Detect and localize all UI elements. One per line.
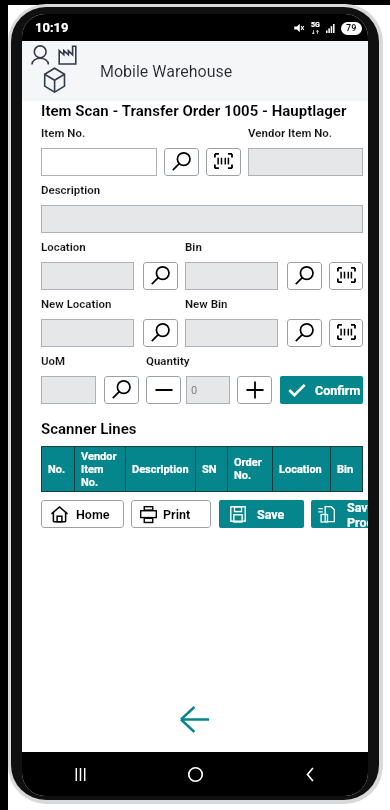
button[interactable]: Scan barcode bbox=[206, 148, 241, 176]
staticText: Order No. bbox=[234, 456, 270, 482]
button[interactable]: Vendor Item No. bbox=[74, 446, 125, 492]
staticText: Item No. bbox=[41, 126, 86, 139]
other: Mobile Warehouse logo bbox=[22, 41, 92, 101]
staticText: Bin bbox=[185, 240, 202, 253]
staticText: No. bbox=[48, 463, 66, 476]
other: Search bbox=[151, 267, 169, 285]
other: Search bbox=[295, 267, 313, 285]
other: Scan barcode bbox=[337, 267, 356, 284]
other: Scan barcode bbox=[337, 324, 356, 341]
staticText: Item Scan - Transfer Order 1005 - Hauptl… bbox=[41, 102, 347, 120]
button[interactable] bbox=[41, 319, 134, 347]
button[interactable]: No. bbox=[41, 446, 74, 492]
button[interactable]: Scan barcode bbox=[329, 319, 363, 347]
staticText: Print bbox=[163, 507, 191, 522]
button[interactable]: Confirm bbox=[280, 376, 363, 404]
other: Increase bbox=[246, 381, 264, 399]
button[interactable]: 0 bbox=[186, 376, 230, 404]
staticText: 79 bbox=[346, 23, 357, 34]
staticText: 0 bbox=[191, 384, 198, 397]
other: Decrease bbox=[155, 381, 173, 399]
staticText: Home bbox=[76, 507, 110, 522]
button[interactable]: Search bbox=[287, 319, 322, 347]
staticText: New Location bbox=[41, 297, 112, 310]
button[interactable]: Home bbox=[41, 500, 124, 528]
button[interactable]: Save & bbox=[311, 500, 368, 528]
staticText: Quantity bbox=[146, 354, 190, 367]
staticText: Bin bbox=[337, 463, 354, 476]
button[interactable]: Search bbox=[104, 376, 139, 404]
button[interactable]: Increase bbox=[237, 376, 272, 404]
staticText: Vendor Item No. bbox=[248, 126, 333, 139]
button[interactable]: SN bbox=[195, 446, 227, 492]
button[interactable]: Search bbox=[143, 319, 178, 347]
staticText: ↓↑ bbox=[311, 29, 320, 35]
staticText: 5G bbox=[311, 21, 320, 29]
staticText: Vendor Item No. bbox=[81, 450, 123, 489]
button[interactable]: Print bbox=[131, 500, 211, 528]
other: Back bbox=[180, 706, 210, 733]
other: Search bbox=[172, 153, 190, 171]
button[interactable] bbox=[248, 148, 363, 176]
staticText: Mobile Warehouse bbox=[100, 62, 233, 81]
button[interactable]: Recents bbox=[58, 752, 102, 796]
button[interactable] bbox=[41, 148, 157, 176]
button[interactable]: Back bbox=[288, 752, 332, 796]
other: Search bbox=[112, 381, 130, 399]
button[interactable]: Search bbox=[164, 148, 199, 176]
staticText: Description bbox=[132, 463, 189, 476]
button[interactable] bbox=[185, 319, 278, 347]
staticText: Save bbox=[257, 507, 285, 522]
staticText: SN bbox=[202, 463, 217, 476]
staticText: Save & bbox=[347, 500, 368, 515]
other: Search bbox=[151, 324, 169, 342]
button[interactable] bbox=[41, 262, 134, 290]
staticText: Process bbox=[347, 515, 368, 528]
staticText: Location bbox=[279, 463, 322, 476]
button[interactable]: Bin bbox=[330, 446, 361, 492]
staticText: Confirm bbox=[315, 383, 361, 398]
button[interactable]: Search bbox=[143, 262, 178, 290]
button[interactable]: Location bbox=[272, 446, 330, 492]
button[interactable]: Search bbox=[287, 262, 322, 290]
staticText: 10:19 bbox=[35, 20, 69, 35]
other: Search bbox=[295, 324, 313, 342]
button[interactable]: Home bbox=[173, 752, 217, 796]
button[interactable]: Decrease bbox=[146, 376, 181, 404]
staticText: New Bin bbox=[185, 297, 228, 310]
staticText: Scanner Lines bbox=[41, 420, 137, 438]
button[interactable] bbox=[41, 376, 96, 404]
staticText: Location bbox=[41, 240, 86, 253]
button[interactable] bbox=[41, 205, 363, 233]
button[interactable]: Order No. bbox=[227, 446, 272, 492]
button[interactable]: Description bbox=[125, 446, 195, 492]
button[interactable]: Save bbox=[219, 500, 304, 528]
staticText: UoM bbox=[41, 354, 66, 367]
button[interactable]: Scan barcode bbox=[329, 262, 363, 290]
button[interactable] bbox=[185, 262, 278, 290]
staticText: Description bbox=[41, 183, 101, 196]
other: Scan barcode bbox=[214, 153, 233, 170]
